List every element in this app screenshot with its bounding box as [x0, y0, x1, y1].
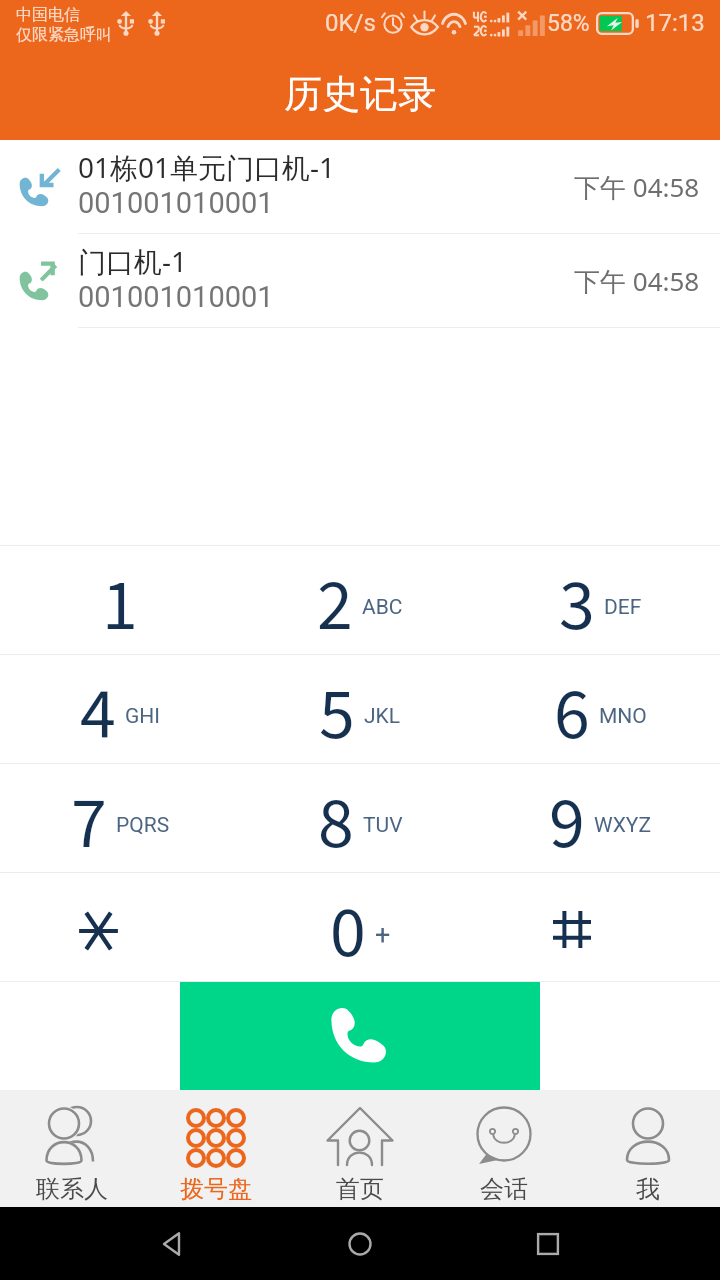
button[interactable]: 4 [0, 655, 240, 763]
button[interactable]: 会话 [432, 1090, 576, 1207]
staticText: PQRS [116, 813, 170, 838]
button[interactable]: 我 [576, 1090, 720, 1207]
button[interactable]: 5 [240, 655, 480, 763]
staticText: 下午 04:58 [574, 263, 700, 299]
staticText: 下午 04:58 [574, 169, 700, 205]
staticText: + [375, 919, 391, 951]
staticText: GHI [125, 704, 160, 729]
staticText: 01栋01单元门口机-1 [78, 148, 336, 186]
button[interactable]: 联系人 [0, 1090, 144, 1207]
staticText: WXYZ [594, 813, 651, 838]
button[interactable]: Recents [533, 1229, 563, 1259]
button[interactable]: 6 [480, 655, 720, 763]
button[interactable]: Pound [480, 873, 720, 981]
button[interactable]: 首页 [288, 1090, 432, 1207]
staticText: 6 [554, 664, 590, 767]
staticText: 3 [559, 555, 595, 658]
staticText: 2 [317, 555, 353, 658]
staticText: 1 [102, 555, 138, 658]
button[interactable]: 0 [240, 873, 480, 981]
button[interactable]: Call [180, 982, 540, 1090]
button[interactable]: 01栋01单元门口机-1 [0, 140, 720, 234]
staticText: 001001010001 [78, 186, 274, 220]
staticText: 门口机-1 [78, 242, 188, 280]
staticText: 拨号盘 [180, 1174, 252, 1204]
staticText: TUV [363, 813, 403, 838]
button[interactable]: 拨号盘 [144, 1090, 288, 1207]
button[interactable]: Star [0, 873, 240, 981]
staticText: 会话 [480, 1174, 528, 1204]
staticText: DEF [604, 595, 642, 620]
button[interactable]: 2 [240, 546, 480, 654]
staticText: 17:13 [645, 9, 705, 37]
staticText: 联系人 [36, 1174, 108, 1204]
button[interactable]: 1 [0, 546, 240, 654]
button[interactable]: 门口机-1 [0, 234, 720, 328]
staticText: 仅限紧急呼叫 [16, 25, 112, 45]
button[interactable]: Home [345, 1229, 375, 1259]
staticText: 中国电信 [16, 5, 80, 25]
staticText: 5 [319, 664, 355, 767]
staticText: MNO [599, 704, 647, 729]
staticText: 7 [71, 773, 107, 876]
staticText: 历史记录 [284, 70, 436, 118]
staticText: 0K/s [325, 9, 376, 37]
button[interactable]: 7 [0, 764, 240, 872]
staticText: 我 [636, 1174, 660, 1204]
button[interactable]: 8 [240, 764, 480, 872]
button[interactable]: Back [158, 1229, 188, 1259]
staticText: 8 [318, 773, 354, 876]
staticText: 首页 [336, 1174, 384, 1204]
staticText: 0 [330, 882, 366, 985]
staticText: 4 [80, 664, 116, 767]
staticText: 58% [547, 10, 590, 37]
button[interactable]: 3 [480, 546, 720, 654]
staticText: 9 [549, 773, 585, 876]
staticText: JKL [364, 704, 401, 729]
staticText: ABC [362, 595, 403, 620]
staticText: 001001010001 [78, 280, 274, 314]
button[interactable]: 9 [480, 764, 720, 872]
